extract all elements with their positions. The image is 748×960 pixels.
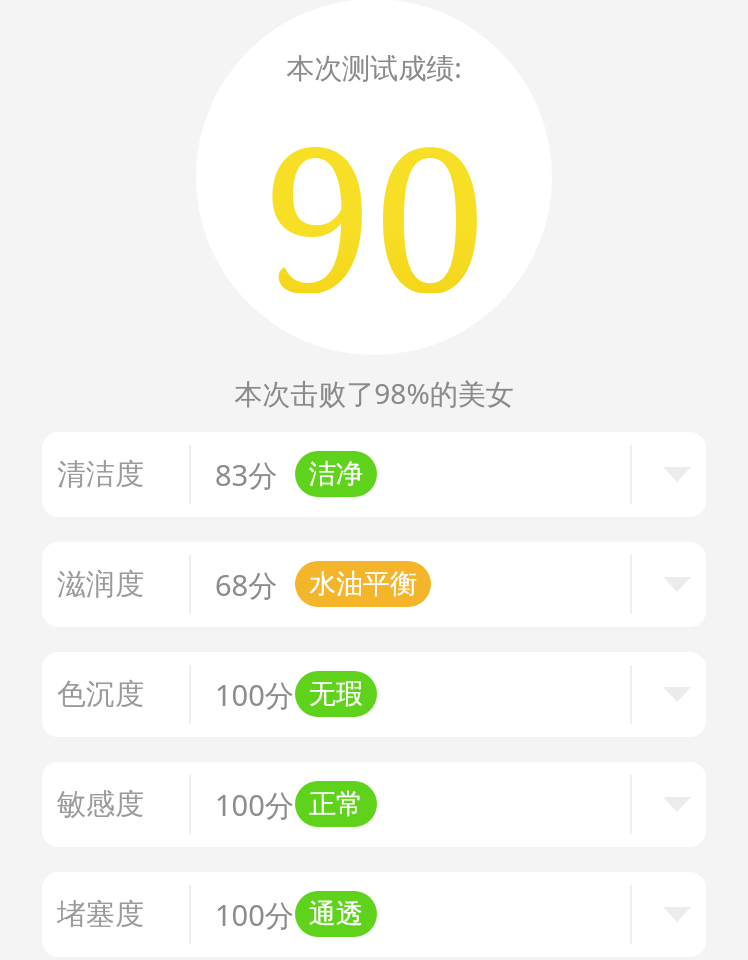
- staticText: 清洁度: [57, 456, 144, 493]
- staticText: 无瑕: [309, 677, 363, 711]
- staticText: 本次测试成绩:: [286, 48, 462, 86]
- button[interactable]: 堵塞度: [42, 872, 706, 957]
- button[interactable]: 清洁度: [42, 432, 706, 517]
- button[interactable]: 洁净: [295, 451, 377, 497]
- button[interactable]: 滋润度: [42, 542, 706, 627]
- staticText: 正常: [309, 787, 363, 821]
- button[interactable]: 水油平衡: [295, 561, 431, 607]
- button[interactable]: Expand 色沉度: [648, 652, 706, 737]
- button[interactable]: 敏感度: [42, 762, 706, 847]
- staticText: 堵塞度: [57, 896, 144, 933]
- button[interactable]: 色沉度: [42, 652, 706, 737]
- button[interactable]: Expand 滋润度: [648, 542, 706, 627]
- staticText: 83分: [215, 455, 278, 495]
- staticText: 色沉度: [57, 676, 144, 713]
- staticText: 本次击败了98%的美女: [234, 374, 514, 412]
- staticText: 90: [262, 78, 486, 293]
- staticText: 100分: [215, 675, 294, 715]
- button[interactable]: 无瑕: [295, 671, 377, 717]
- button[interactable]: 通透: [295, 891, 377, 937]
- button[interactable]: Expand 清洁度: [648, 432, 706, 517]
- staticText: 通透: [309, 897, 363, 931]
- button[interactable]: 正常: [295, 781, 377, 827]
- staticText: 水油平衡: [309, 567, 417, 601]
- staticText: 68分: [215, 565, 278, 605]
- staticText: 100分: [215, 895, 294, 935]
- button[interactable]: Expand 敏感度: [648, 762, 706, 847]
- staticText: 100分: [215, 785, 294, 825]
- staticText: 滋润度: [57, 566, 144, 603]
- staticText: 洁净: [309, 457, 363, 491]
- button[interactable]: Expand 堵塞度: [648, 872, 706, 957]
- staticText: 敏感度: [57, 786, 144, 823]
